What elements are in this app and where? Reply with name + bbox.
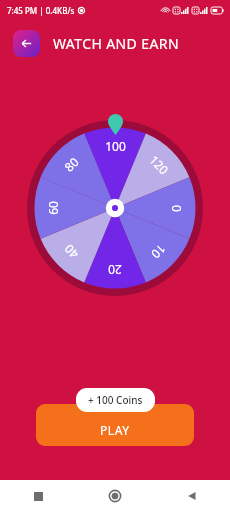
staticText: 20 <box>108 262 122 278</box>
staticText: 10 <box>148 241 169 262</box>
staticText: WATCH AND EARN <box>53 34 179 53</box>
staticText: 60 <box>45 201 61 215</box>
staticText: PLAY <box>100 422 130 438</box>
button[interactable]: Back <box>153 480 230 512</box>
staticText: 40 <box>61 241 82 262</box>
button[interactable]: Recents <box>0 480 76 512</box>
staticText: 7:45 PM | 0.4KB/s <box>7 5 75 16</box>
staticText: 100 <box>105 138 126 154</box>
staticText: 0 <box>169 205 185 212</box>
staticText: 80 <box>61 154 82 175</box>
button[interactable]: PLAY <box>36 404 194 446</box>
button[interactable]: Back <box>13 30 40 57</box>
staticText: 120 <box>146 151 172 178</box>
staticText: + 100 Coins <box>88 393 143 407</box>
button[interactable]: Home <box>76 480 153 512</box>
button[interactable]: Spin wheel <box>27 120 203 296</box>
